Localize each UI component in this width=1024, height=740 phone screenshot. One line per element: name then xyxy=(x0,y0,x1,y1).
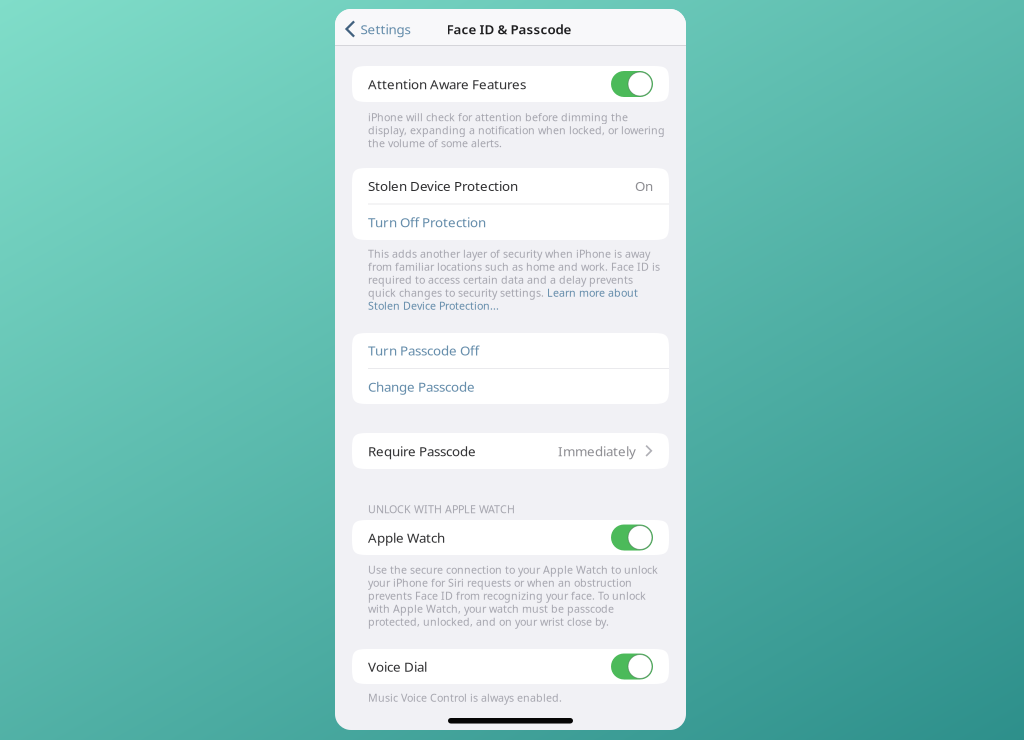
staticText: from familiar locations such as home and… xyxy=(368,259,660,274)
staticText: your iPhone for Siri requests or when an… xyxy=(368,575,632,590)
staticText: Turn Off Protection xyxy=(368,213,486,231)
staticText: On xyxy=(635,177,653,195)
staticText: Music Voice Control is always enabled. xyxy=(368,690,562,705)
staticText: Require Passcode xyxy=(368,442,476,460)
staticText: required to access certain data and a de… xyxy=(368,272,633,287)
button[interactable]: Turn Passcode Off xyxy=(352,333,669,368)
staticText: Change Passcode xyxy=(368,378,475,395)
staticText: Stolen Device Protection xyxy=(368,177,518,195)
staticText: Turn Passcode Off xyxy=(368,341,479,359)
staticText: quick changes to security settings. xyxy=(368,285,547,300)
staticText: Use the secure connection to your Apple … xyxy=(368,562,658,577)
staticText: display, expanding a notification when l… xyxy=(368,123,665,137)
staticText: UNLOCK WITH APPLE WATCH xyxy=(368,502,515,516)
button[interactable]: Settings xyxy=(335,11,415,47)
button[interactable]: Apple Watch xyxy=(352,520,669,555)
staticText: prevents Face ID from recognizing your f… xyxy=(368,588,646,603)
staticText: Immediately xyxy=(558,442,636,460)
staticText: Attention Aware Features xyxy=(368,75,526,93)
staticText: Stolen Device Protection... xyxy=(368,298,499,313)
staticText: This adds another layer of security when… xyxy=(368,246,650,261)
staticText: protected, unlocked, and on your wrist c… xyxy=(368,614,609,629)
staticText: Apple Watch xyxy=(368,529,445,546)
button[interactable]: Attention Aware Features xyxy=(352,66,669,102)
staticText: the volume of some alerts. xyxy=(368,136,502,150)
staticText: iPhone will check for attention before d… xyxy=(368,110,628,124)
staticText: Voice Dial xyxy=(368,658,427,675)
button[interactable]: Voice Dial xyxy=(352,649,669,684)
staticText: Learn more about xyxy=(547,285,638,300)
button[interactable]: Stolen Device Protection xyxy=(352,168,669,204)
staticText: Settings xyxy=(361,20,411,38)
staticText: with Apple Watch, your watch must be pas… xyxy=(368,601,614,616)
button[interactable]: Require Passcode xyxy=(352,433,669,469)
staticText: Face ID & Passcode xyxy=(447,20,572,38)
button[interactable]: Turn Off Protection xyxy=(352,204,669,240)
button[interactable]: Change Passcode xyxy=(352,369,669,404)
